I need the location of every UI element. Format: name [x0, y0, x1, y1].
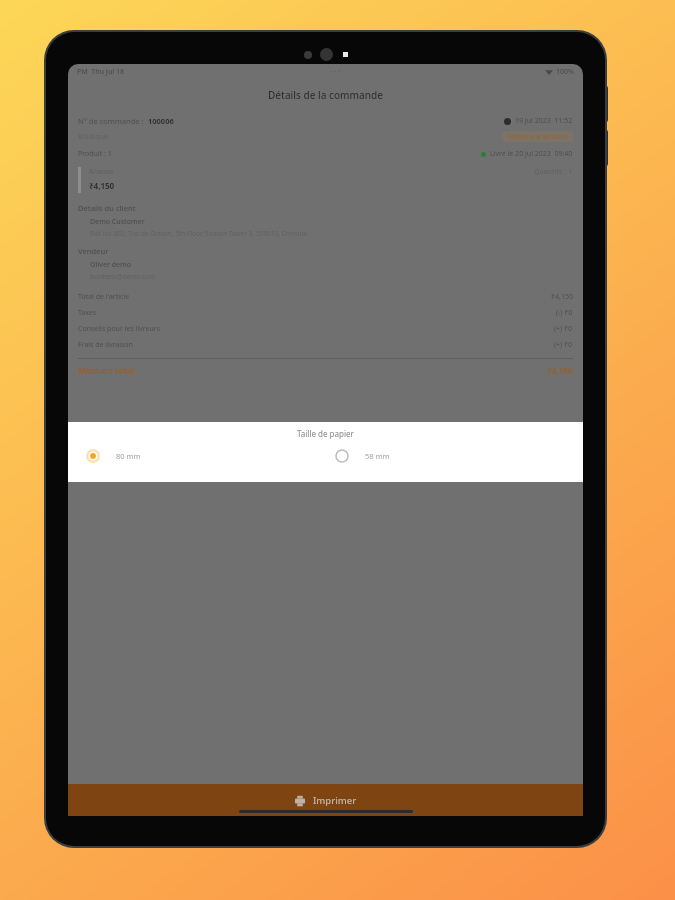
- staticText: 58 mm: [365, 451, 390, 461]
- staticText: Oliver demo: [90, 260, 132, 270]
- staticText: Imprimer: [313, 794, 357, 807]
- staticText: 80 mm: [116, 451, 141, 461]
- staticText: Vendeur: [78, 246, 109, 256]
- other: 58 mm: [335, 449, 349, 463]
- staticText: Flat No 302, Top de Grasim, 5th Floor, S…: [90, 229, 307, 238]
- staticText: Produit : 1: [78, 149, 112, 159]
- staticText: Frais de livraison: [78, 340, 133, 350]
- staticText: Total de l'article: [78, 292, 130, 302]
- staticText: Quantité : 1: [534, 167, 573, 177]
- staticText: Boutique: [78, 132, 109, 142]
- staticText: (-) ₹0: [556, 308, 573, 318]
- staticText: 19 Jul 2023 11:52: [515, 116, 573, 126]
- staticText: Demo Customer: [90, 217, 145, 227]
- button[interactable]: 80 mm selected: [68, 449, 325, 463]
- staticText: (+) ₹0: [554, 324, 573, 334]
- staticText: ₹4,150: [89, 180, 115, 191]
- staticText: Conseils pour les livreurs: [78, 324, 161, 334]
- staticText: Taxes: [78, 308, 97, 318]
- staticText: Détails de la commande: [268, 88, 383, 102]
- button[interactable]: Imprimer: [68, 784, 583, 816]
- staticText: 100%: [556, 67, 574, 77]
- staticText: business@demo.com: [90, 272, 156, 281]
- staticText: ₹4,150: [551, 292, 573, 302]
- staticText: Détails du client: [78, 203, 136, 213]
- staticText: 100006: [148, 116, 174, 126]
- staticText: Taille de papier: [297, 428, 354, 439]
- staticText: Livré le 20 Jul 2023 09:40: [490, 149, 573, 159]
- staticText: N° de commande :: [78, 116, 148, 126]
- staticText: Ananas: [89, 167, 114, 177]
- staticText: PM Thu Jul 18: [77, 67, 125, 77]
- other: 80 mm selected: [86, 449, 100, 463]
- staticText: Passee a la livraison: [507, 132, 568, 141]
- staticText: (+) ₹0: [554, 340, 573, 350]
- staticText: ₹4,150: [547, 365, 573, 376]
- button[interactable]: 58 mm: [325, 449, 583, 463]
- staticText: Montant total: [78, 365, 134, 376]
